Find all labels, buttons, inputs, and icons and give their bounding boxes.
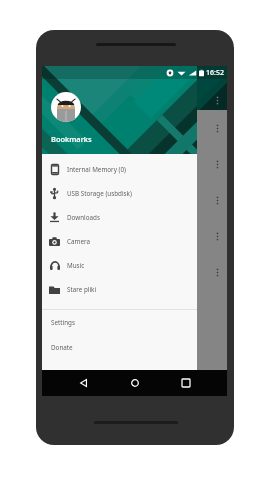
button[interactable]: Downloads [42, 205, 197, 229]
staticText: Stare pliki [67, 285, 97, 294]
staticText: Bookmarks [51, 134, 92, 144]
button[interactable]: More options [215, 95, 220, 106]
button[interactable]: USB Storage (usbdisk) [42, 181, 197, 205]
button[interactable]: Internal Memory (0) [42, 157, 197, 181]
staticText: Camera [67, 237, 90, 246]
staticText: Internal Memory (0) [67, 165, 126, 174]
staticText: Donate [51, 343, 73, 352]
button[interactable]: Home [124, 372, 146, 394]
staticText: Downloads [67, 213, 100, 222]
button[interactable]: Settings [51, 310, 197, 335]
staticText: 16:52 [206, 68, 224, 78]
staticText: Music [67, 261, 85, 270]
staticText: USB Storage (usbdisk) [67, 189, 132, 198]
button[interactable]: Donate [51, 335, 197, 360]
button[interactable]: Camera [42, 229, 197, 253]
staticText: Settings [51, 318, 75, 327]
button[interactable]: Stare pliki [42, 277, 197, 301]
button[interactable]: Recents [175, 372, 197, 394]
button[interactable]: Back [72, 372, 94, 394]
button[interactable]: Music [42, 253, 197, 277]
